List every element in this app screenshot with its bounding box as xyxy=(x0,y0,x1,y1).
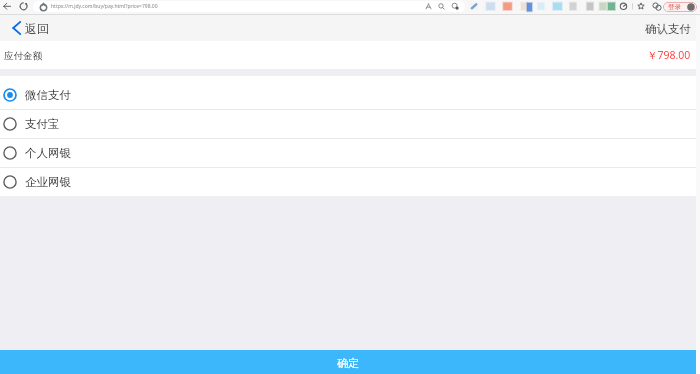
button[interactable]: 微信支付 xyxy=(0,81,696,109)
button[interactable]: 个人网银 xyxy=(0,139,696,167)
button[interactable]: 返回 xyxy=(0,17,57,40)
staticText: 支付宝 xyxy=(25,117,60,131)
button[interactable]: 企业网银 xyxy=(0,168,696,196)
button[interactable]: Bookmark this page xyxy=(634,1,647,14)
button[interactable]: Address bar xyxy=(33,1,465,12)
button[interactable]: 确认支付 xyxy=(636,17,696,39)
button[interactable]: Reload xyxy=(17,1,30,14)
staticText: 应付金额 xyxy=(4,50,42,62)
staticText: 企业网银 xyxy=(25,175,71,189)
button[interactable]: 确定 xyxy=(0,350,696,374)
staticText: 登录 xyxy=(668,3,681,11)
staticText: ￥798.00 xyxy=(647,48,691,62)
button[interactable]: Back xyxy=(1,1,14,14)
button[interactable]: Sign in xyxy=(663,2,697,12)
staticText: 确认支付 xyxy=(645,22,691,36)
button[interactable]: Extensions xyxy=(650,1,663,14)
staticText: https://m.jdy.com/buy/pay.html?price=798… xyxy=(51,3,158,10)
staticText: 确定 xyxy=(337,356,359,370)
staticText: 微信支付 xyxy=(25,88,71,102)
button[interactable]: 支付宝 xyxy=(0,110,696,138)
staticText: 个人网银 xyxy=(25,146,71,160)
staticText: 返回 xyxy=(25,21,49,36)
button[interactable]: History xyxy=(617,1,630,14)
